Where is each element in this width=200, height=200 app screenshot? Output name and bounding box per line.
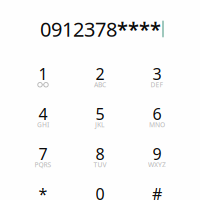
button[interactable]: # [128,177,185,200]
staticText: PQRS [34,160,51,169]
staticText: 0 [95,183,104,200]
staticText: ABC [94,80,106,89]
staticText: 1 [38,63,47,84]
button[interactable]: 0 [71,177,128,200]
staticText: * [38,183,47,200]
staticText: 6 [152,103,161,124]
button[interactable]: 4 [14,97,71,137]
button[interactable]: 1 [14,57,71,97]
button[interactable]: 7 [14,137,71,177]
staticText: 7 [38,143,47,164]
staticText: 8 [95,143,104,164]
staticText: JKL [95,120,105,129]
staticText: 4 [38,103,47,124]
staticText: WXYZ [148,160,166,169]
staticText: 2 [95,63,104,84]
button[interactable]: 5 [71,97,128,137]
staticText: 5 [95,103,104,124]
button[interactable]: * [14,177,71,200]
staticText: # [152,183,162,200]
button[interactable]: 9 [128,137,185,177]
button[interactable]: 6 [128,97,185,137]
button[interactable]: 2 [71,57,128,97]
button[interactable]: 8 [71,137,128,177]
staticText: MNO [149,120,165,129]
staticText: 3 [152,63,161,84]
staticText: DEF [150,80,163,89]
staticText: 0912378**** [40,16,161,42]
staticText: 9 [152,143,161,164]
button[interactable]: 3 [128,57,185,97]
staticText: GHI [37,120,49,129]
staticText: TUV [93,160,106,169]
